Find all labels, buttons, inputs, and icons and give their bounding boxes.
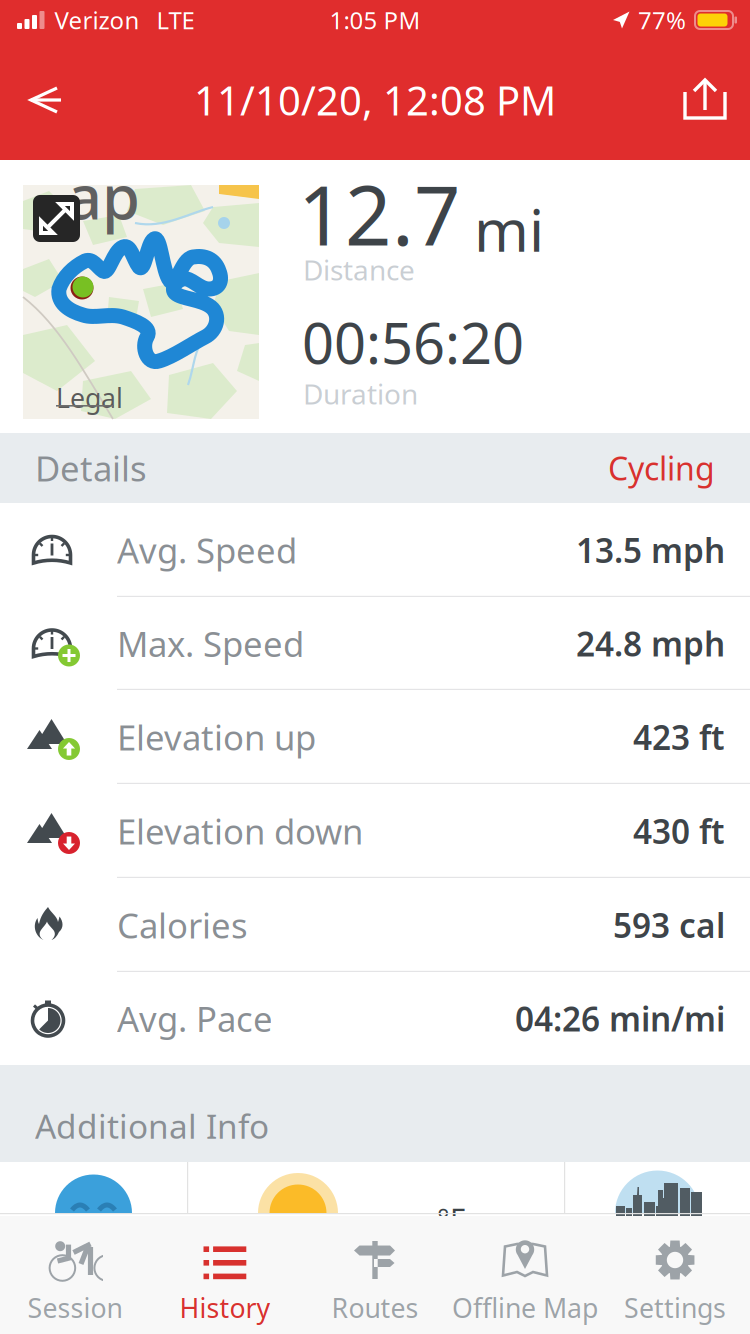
button[interactable]: Settings bbox=[600, 1216, 750, 1334]
staticText: Details bbox=[35, 445, 147, 491]
staticText: 593 cal bbox=[613, 903, 725, 947]
staticText: LTE bbox=[156, 4, 194, 36]
staticText: °F bbox=[437, 1199, 465, 1238]
staticText: 11/10/20, 12:08 PM bbox=[194, 73, 556, 126]
staticText: 00:56:20 bbox=[302, 305, 524, 379]
button[interactable]: Avg. Speed bbox=[0, 503, 750, 597]
staticText: Additional Info bbox=[35, 1104, 269, 1148]
staticText: Verizon bbox=[54, 4, 139, 36]
staticText: 04:26 min/mi bbox=[515, 996, 725, 1041]
button[interactable]: Share bbox=[674, 68, 736, 132]
staticText: Settings bbox=[624, 1290, 726, 1325]
staticText: Elevation up bbox=[117, 714, 316, 760]
button[interactable]: History bbox=[150, 1216, 300, 1334]
staticText: mi bbox=[474, 190, 544, 268]
button[interactable]: Elevation up bbox=[0, 690, 750, 784]
button[interactable]: Routes bbox=[300, 1216, 450, 1334]
staticText: 12.7 bbox=[298, 160, 461, 268]
button[interactable]: Offline Map bbox=[450, 1216, 600, 1334]
button[interactable]: Max. Speed bbox=[0, 597, 750, 690]
staticText: 13.5 mph bbox=[576, 528, 725, 572]
staticText: Session bbox=[27, 1290, 122, 1325]
staticText: Avg. Speed bbox=[117, 527, 297, 573]
staticText: Avg. Pace bbox=[117, 995, 273, 1041]
staticText: 77% bbox=[638, 4, 686, 36]
staticText: Duration bbox=[303, 375, 418, 412]
staticText: ap bbox=[67, 155, 140, 236]
staticText: Routes bbox=[331, 1290, 418, 1325]
staticText: Elevation down bbox=[117, 808, 363, 854]
staticText: 1:05 PM bbox=[329, 4, 420, 36]
staticText: Legal bbox=[56, 380, 123, 415]
staticText: 423 ft bbox=[633, 715, 725, 759]
staticText: Max. Speed bbox=[117, 620, 304, 666]
button[interactable]: Back bbox=[14, 68, 74, 132]
staticText: Offline Map bbox=[452, 1290, 598, 1325]
button[interactable]: Avg. Pace bbox=[0, 972, 750, 1065]
button[interactable]: Elevation down bbox=[0, 784, 750, 878]
staticText: 24.8 mph bbox=[576, 621, 725, 666]
button[interactable]: Calories bbox=[0, 878, 750, 972]
staticText: Calories bbox=[117, 902, 248, 948]
button[interactable]: Session bbox=[0, 1216, 150, 1334]
staticText: 430 ft bbox=[633, 809, 725, 853]
staticText: Cycling bbox=[608, 447, 715, 489]
staticText: History bbox=[179, 1290, 270, 1325]
staticText: Distance bbox=[303, 251, 415, 288]
